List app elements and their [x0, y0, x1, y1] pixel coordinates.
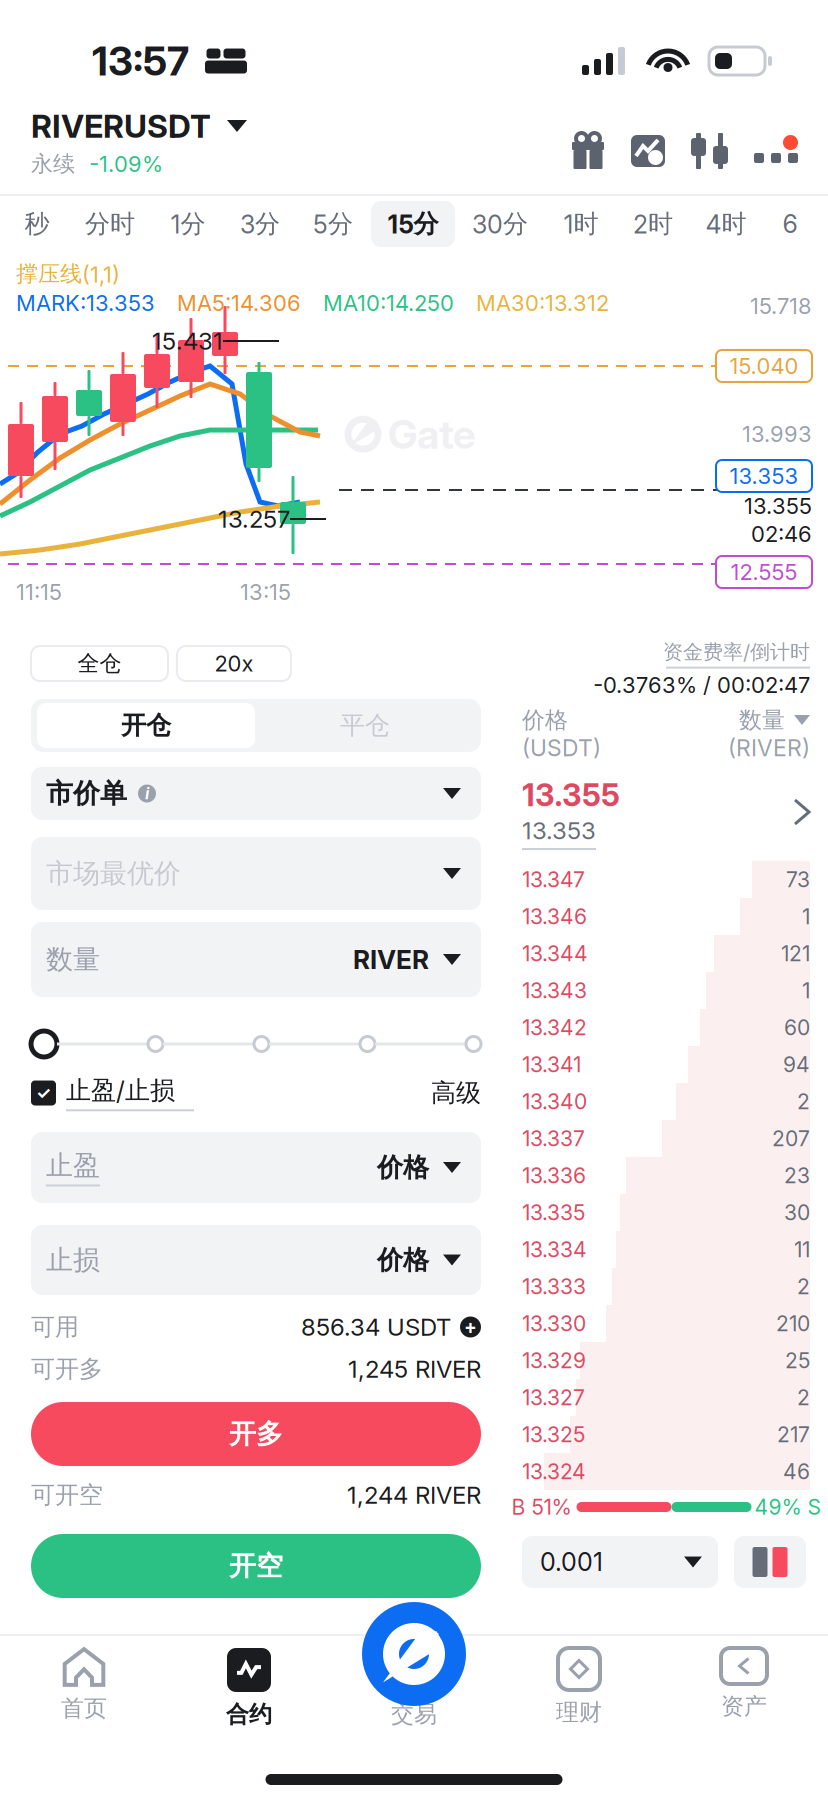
staticText: 13.329: [522, 1348, 586, 1373]
staticText: 30分: [472, 208, 528, 240]
button[interactable]: 5分: [290, 196, 376, 252]
button[interactable]: 13.327: [522, 1379, 810, 1416]
staticText: (RIVER): [728, 734, 810, 762]
staticText: 可用: [31, 1312, 79, 1342]
staticText: 13.327: [522, 1385, 585, 1410]
button[interactable]: 13.341: [522, 1046, 810, 1083]
button[interactable]: 平仓: [255, 703, 475, 748]
button[interactable]: 资金费率/倒计时: [522, 639, 810, 669]
button[interactable]: 13.335: [522, 1194, 810, 1231]
button[interactable]: 13.340: [522, 1083, 810, 1120]
button[interactable]: 资产: [661, 1636, 826, 1754]
button[interactable]: 3分: [230, 196, 290, 252]
staticText: 数量: [46, 942, 100, 976]
staticText: 02:46: [751, 521, 812, 547]
button[interactable]: 20x: [177, 646, 291, 681]
button[interactable]: 13.343: [522, 972, 810, 1009]
button[interactable]: 开多: [31, 1402, 481, 1466]
staticText: 价格: [377, 1244, 429, 1276]
button[interactable]: RIVERUSDT: [31, 108, 247, 194]
button[interactable]: 1时: [550, 196, 612, 252]
button[interactable]: 全仓: [31, 646, 168, 681]
button[interactable]: Chart type: [631, 135, 665, 167]
staticText: 资金费率/倒计时: [663, 639, 810, 665]
staticText: 1: [802, 978, 810, 1003]
staticText: 13.993: [742, 421, 812, 447]
staticText: 资产: [721, 1692, 767, 1721]
button[interactable]: 30分: [450, 196, 550, 252]
staticText: 13.330: [522, 1311, 586, 1336]
staticText: 15.718: [750, 293, 812, 319]
button[interactable]: 13.333: [522, 1268, 810, 1305]
button[interactable]: 秒: [0, 196, 74, 252]
staticText: 合约: [226, 1700, 272, 1729]
staticText: RIVERUSDT: [31, 107, 211, 145]
button[interactable]: 止损: [31, 1225, 481, 1295]
button[interactable]: 13.325: [522, 1416, 810, 1453]
staticText: 开多: [229, 1417, 283, 1451]
staticText: 市场最优价: [46, 856, 181, 890]
button[interactable]: 0.001: [522, 1536, 718, 1588]
button[interactable]: ✓: [31, 1075, 194, 1111]
button[interactable]: 13.346: [522, 898, 810, 935]
staticText: 1,245 RIVER: [348, 1354, 481, 1383]
staticText: 止盈/止损: [66, 1075, 175, 1106]
staticText: Gate: [388, 410, 476, 458]
staticText: 13:57: [92, 37, 189, 85]
staticText: i: [145, 784, 149, 803]
staticText: 13.353: [729, 463, 798, 489]
button[interactable]: 13.344: [522, 935, 810, 972]
button[interactable]: 市价单: [31, 767, 481, 820]
staticText: 25: [785, 1348, 810, 1373]
button[interactable]: 2时: [612, 196, 694, 252]
button[interactable]: 1分: [146, 196, 230, 252]
staticText: 15分: [387, 208, 438, 240]
staticText: -1.09%: [89, 151, 163, 177]
staticText: 15.040: [729, 353, 798, 379]
button[interactable]: 13.330: [522, 1305, 810, 1342]
button[interactable]: 合约: [166, 1636, 331, 1754]
button[interactable]: 13.334: [522, 1231, 810, 1268]
staticText: 60: [784, 1015, 810, 1040]
button[interactable]: 13.336: [522, 1157, 810, 1194]
button[interactable]: 13.355: [522, 774, 810, 850]
button[interactable]: 13.329: [522, 1342, 810, 1379]
staticText: 交易: [391, 1700, 437, 1729]
button[interactable]: More: [754, 133, 798, 169]
staticText: 理财: [556, 1698, 602, 1727]
staticText: 12.555: [730, 559, 797, 585]
button[interactable]: 15分: [376, 196, 450, 252]
button[interactable]: 止盈: [31, 1132, 481, 1203]
button[interactable]: 交易: [331, 1636, 496, 1754]
staticText: 23: [784, 1163, 810, 1188]
button[interactable]: 首页: [1, 1636, 166, 1754]
button[interactable]: 13.347: [522, 861, 810, 898]
button[interactable]: 开空: [31, 1534, 481, 1598]
button[interactable]: 4时: [694, 196, 758, 252]
staticText: 11: [794, 1237, 810, 1262]
staticText: 止盈: [46, 1148, 100, 1182]
staticText: 永续: [31, 150, 75, 178]
button[interactable]: Depth chart: [734, 1536, 806, 1588]
staticText: 46: [783, 1459, 810, 1484]
staticText: MA10:14.250: [323, 290, 454, 316]
button[interactable]: 13.324: [522, 1453, 810, 1490]
button[interactable]: 开仓: [37, 703, 255, 748]
button[interactable]: 高级: [431, 1077, 481, 1109]
staticText: 止损: [46, 1243, 100, 1277]
staticText: 1分: [170, 208, 205, 240]
button[interactable]: 数量: [31, 922, 481, 997]
button[interactable]: 13.342: [522, 1009, 810, 1046]
button[interactable]: 市场最优价: [31, 837, 481, 910]
button[interactable]: Indicators: [691, 133, 728, 169]
staticText: 13.336: [522, 1163, 586, 1188]
staticText: 13.344: [522, 941, 588, 966]
button[interactable]: Rewards: [571, 132, 605, 170]
staticText: 13.343: [522, 978, 587, 1003]
button[interactable]: 6: [758, 196, 822, 252]
button[interactable]: 分时: [74, 196, 146, 252]
button[interactable]: 理财: [496, 1636, 661, 1754]
button[interactable]: Trade: [362, 1602, 466, 1706]
staticText: 13.325: [522, 1422, 585, 1447]
button[interactable]: 13.337: [522, 1120, 810, 1157]
